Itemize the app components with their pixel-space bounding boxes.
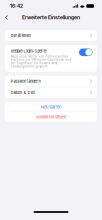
button[interactable]: Zurück [0,12,13,23]
button[interactable]: Illegale Login-Sperre [79,48,92,56]
staticText: Erweiterte Einstellungen [22,14,80,20]
staticText: Nach einer Reihe von Fehlversuchen ersch… [10,55,71,68]
staticText: Wiederherstellen [36,114,66,119]
staticText: Neu starten [41,104,61,109]
button[interactable]: Datum & Zeit [5,87,97,98]
staticText: Datum & Zeit [10,90,34,95]
staticText: 16:42 [10,3,23,9]
staticText: Gerät teilen [10,33,30,38]
button[interactable]: Wiederherstellen [5,112,97,122]
button[interactable]: Gerät teilen [5,30,97,41]
button[interactable]: Passwort ändern [5,76,97,87]
staticText: Passwort ändern [10,79,40,84]
staticText: Illegale Login-Sperre [10,48,46,53]
button[interactable]: Neu starten [5,102,97,112]
